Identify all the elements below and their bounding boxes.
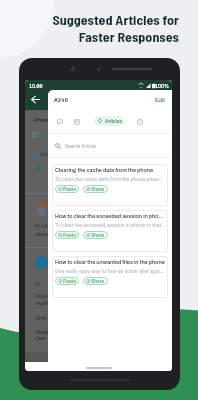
staticText: Search Article — [65, 143, 97, 149]
staticText: Share — [91, 279, 105, 284]
staticText: Open — [40, 151, 52, 157]
staticText: Thank — [35, 330, 49, 336]
button[interactable]: How to clear the exceeded session in pho… — [52, 210, 168, 252]
button[interactable]: History — [135, 117, 144, 126]
staticText: I have — [35, 294, 48, 300]
staticText: To clear the exceeded session in phone i… — [55, 222, 165, 228]
staticText: How to clear the exceeded session in pho… — [55, 213, 165, 219]
button[interactable]: How to clear the unwanted files in the p… — [52, 256, 168, 298]
staticText: Case — [35, 336, 46, 342]
staticText: Clearing the cache data from the phone — [55, 167, 154, 173]
staticText: Articles — [105, 119, 122, 124]
staticText: 100% — [155, 83, 169, 89]
staticText: Hi John, — [35, 224, 53, 230]
button[interactable]: Paste — [55, 277, 79, 285]
staticText: Paste — [63, 279, 76, 284]
button[interactable]: Notes — [55, 117, 64, 126]
staticText: Share — [91, 187, 105, 192]
staticText: Certa — [35, 316, 47, 322]
button[interactable]: Attachments — [72, 117, 81, 126]
button[interactable]: Paste — [55, 185, 79, 193]
staticText: Paste — [63, 233, 76, 238]
staticText: 10.00 — [29, 83, 43, 89]
staticText: Faster Responses — [78, 28, 179, 45]
staticText: Cases — [40, 131, 54, 137]
staticText: Suggested Articles for — [52, 11, 179, 28]
button[interactable]: Clearing the cache data from the phone — [52, 164, 168, 206]
button[interactable]: Share — [83, 277, 108, 285]
staticText: To clear the cache data from the phone p… — [55, 176, 165, 182]
staticText: One really easy way to free up some disk… — [55, 268, 165, 274]
staticText: How to clear the unwanted files in the p… — [55, 259, 165, 265]
staticText: Share — [91, 233, 105, 238]
staticText: Phone — [34, 117, 52, 124]
staticText: my ph — [35, 301, 49, 307]
staticText: please — [35, 232, 50, 238]
button[interactable]: Paste — [55, 231, 79, 239]
staticText: Paste — [63, 187, 76, 192]
staticText: Hi, — [35, 282, 41, 288]
button[interactable]: Edit — [154, 96, 167, 104]
button[interactable]: Share — [83, 185, 108, 193]
button[interactable]: Articles — [94, 116, 125, 126]
button[interactable]: Search Article — [48, 134, 172, 158]
staticText: #249 — [54, 97, 68, 104]
button[interactable]: Back — [27, 91, 44, 108]
staticText: Edit — [155, 97, 166, 103]
button[interactable]: Share — [83, 231, 108, 239]
